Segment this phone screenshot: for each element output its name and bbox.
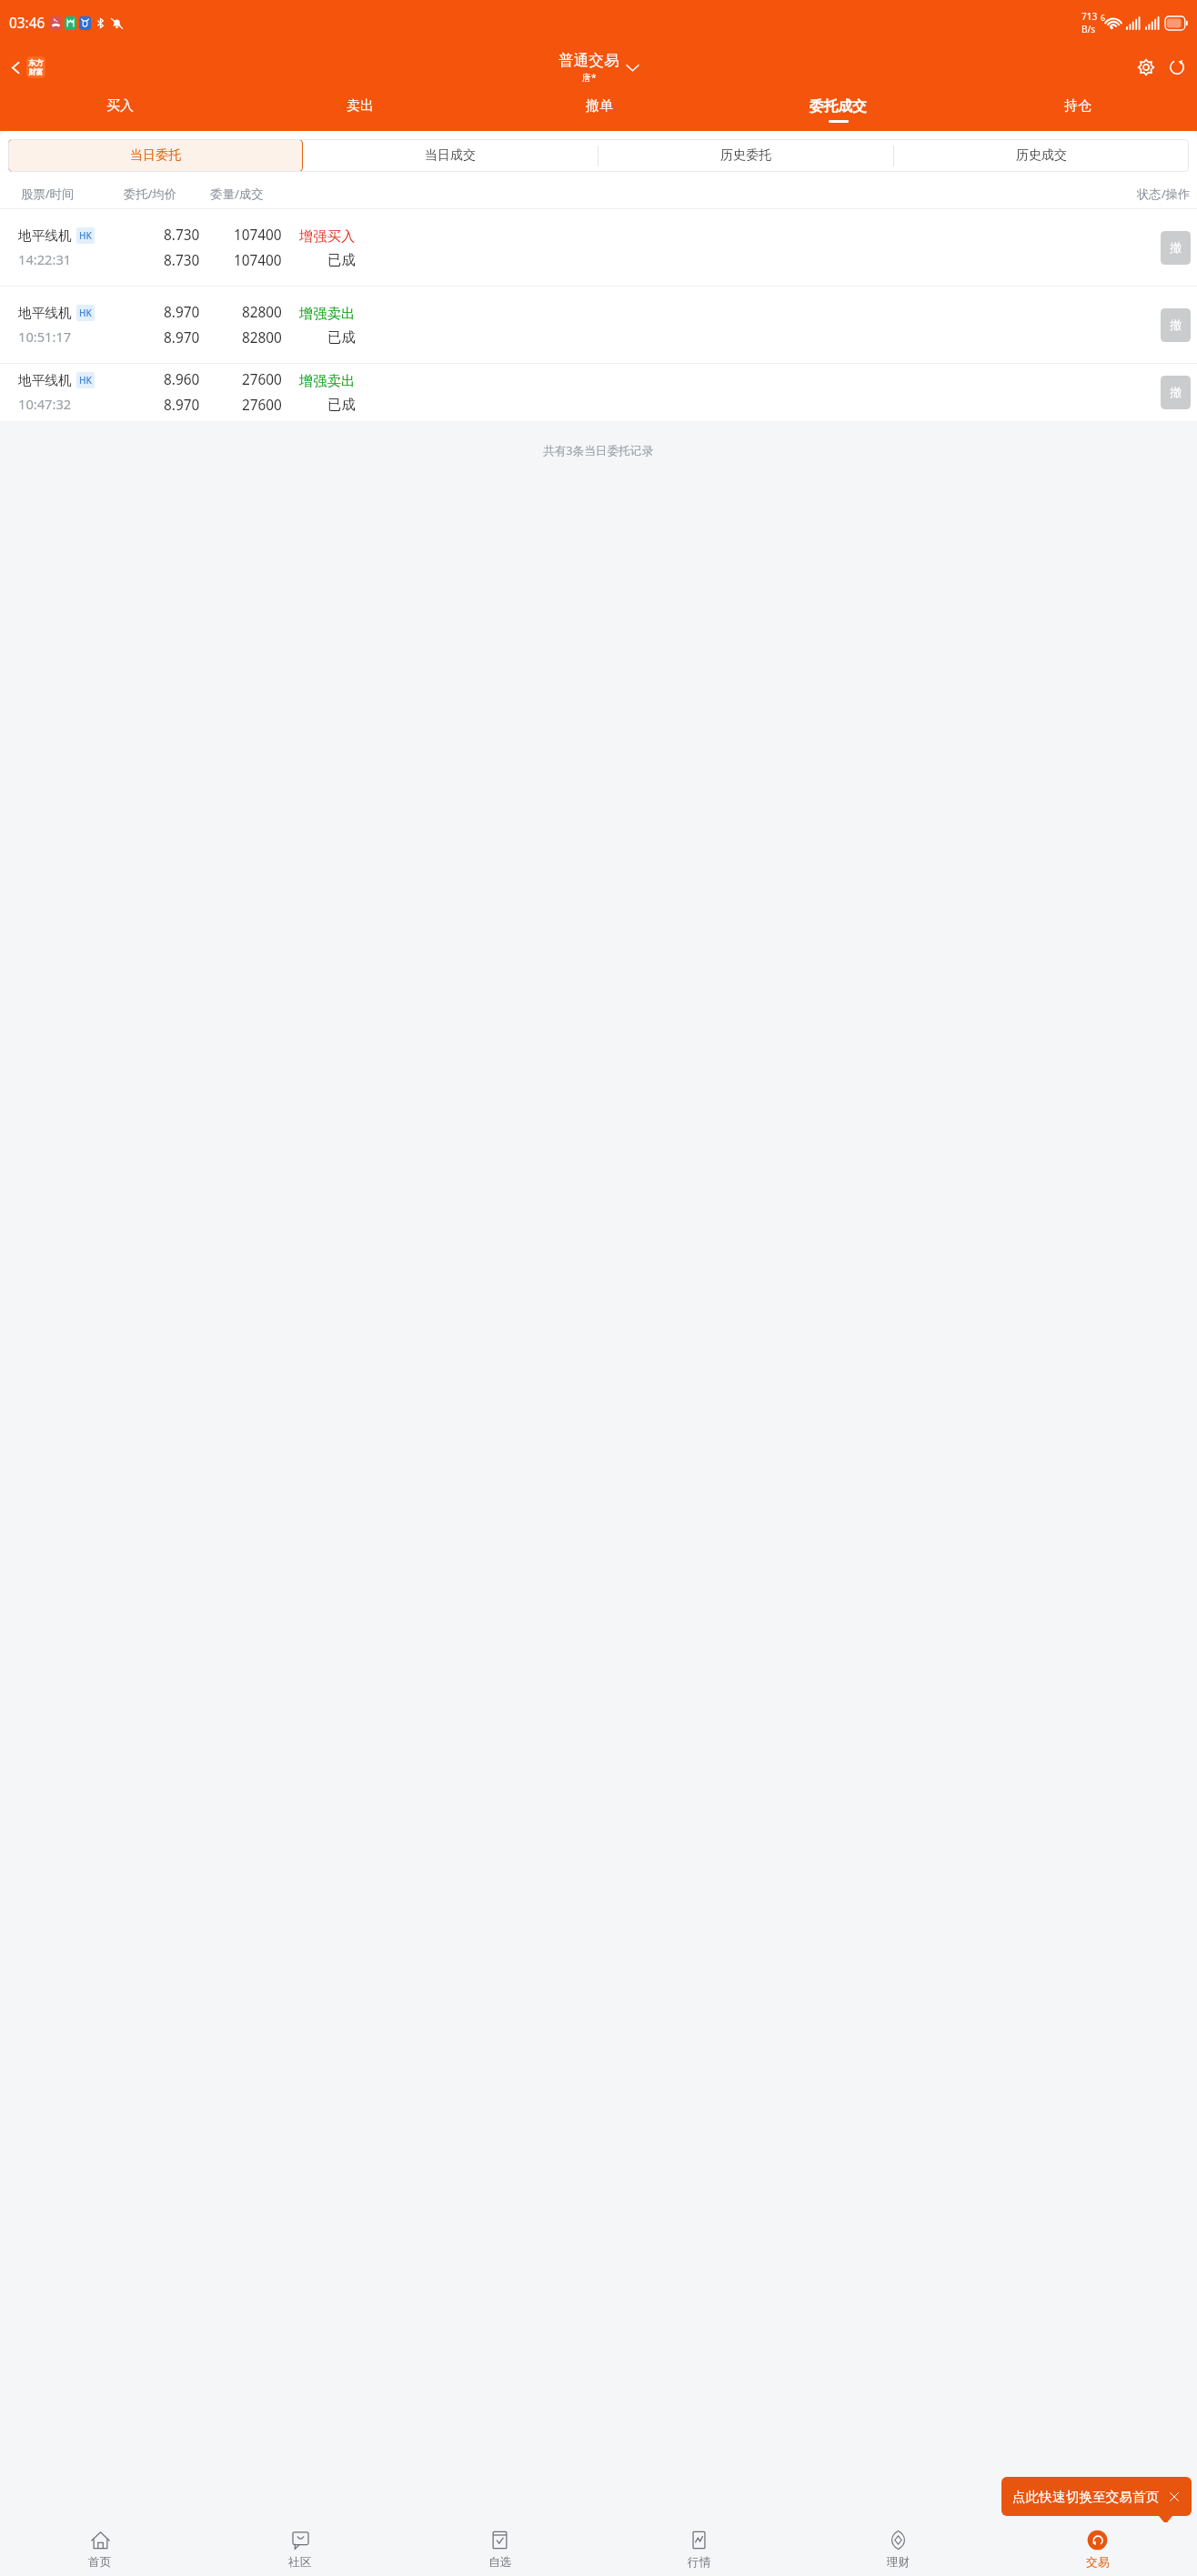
staticText: 82800 [242, 328, 282, 347]
button[interactable]: 撤 [1161, 231, 1191, 265]
button[interactable]: 理财 [799, 2522, 998, 2576]
staticText: HK [79, 229, 92, 242]
button[interactable]: 行情 [599, 2522, 799, 2576]
staticText: 8.970 [164, 303, 200, 322]
button[interactable]: 历史成交 [893, 139, 1189, 172]
staticText: 历史委托 [720, 147, 771, 164]
staticText: 已成 [327, 328, 356, 346]
button[interactable]: 自选 [400, 2522, 599, 2576]
staticText: 82800 [242, 303, 282, 322]
staticText: 8.730 [164, 226, 200, 245]
button[interactable]: 地平线机 [0, 364, 1197, 421]
staticText: 10:47:32 [18, 395, 72, 413]
staticText: 状态/操作 [1137, 186, 1191, 202]
button[interactable]: 社区 [200, 2522, 400, 2576]
button[interactable]: Back [6, 54, 48, 81]
staticText: 8.960 [164, 370, 200, 389]
staticText: 社区 [288, 2555, 312, 2570]
staticText: 03:46 [9, 14, 45, 33]
staticText: 普通交易 [558, 51, 619, 70]
staticText: 委托成交 [810, 97, 867, 116]
staticText: 当日成交 [425, 147, 476, 164]
staticText: 10:51:17 [18, 327, 72, 346]
other: Close [1168, 2490, 1181, 2503]
staticText: 27600 [242, 396, 282, 415]
staticText: 8.970 [164, 396, 200, 415]
button[interactable]: 委托成交 [719, 88, 958, 131]
staticText: HK [79, 374, 92, 387]
button[interactable]: 卖出 [240, 88, 479, 131]
staticText: 首页 [88, 2555, 112, 2570]
staticText: 撤单 [586, 97, 613, 115]
button[interactable]: 点此快速切换至交易首页 [1001, 2477, 1192, 2516]
staticText: 已成 [327, 251, 356, 268]
button[interactable]: 当日成交 [303, 139, 598, 172]
staticText: 8.730 [164, 251, 200, 270]
staticText: 理财 [887, 2555, 910, 2570]
button[interactable]: 撤 [1161, 308, 1191, 342]
staticText: 撤 [1170, 240, 1182, 256]
button[interactable]: 当日委托 [8, 139, 303, 172]
staticText: 历史成交 [1016, 147, 1067, 164]
button[interactable]: 普通交易 [558, 51, 639, 84]
button[interactable]: 交易 [998, 2522, 1197, 2576]
button[interactable]: 撤 [1161, 376, 1191, 409]
staticText: B/s [1081, 23, 1096, 35]
staticText: 撤 [1170, 385, 1182, 400]
button[interactable]: 历史委托 [598, 139, 893, 172]
staticText: 713 [1081, 10, 1098, 23]
staticText: 6 [1101, 13, 1105, 24]
staticText: 当日委托 [130, 147, 181, 164]
staticText: 撤 [1170, 317, 1182, 333]
staticText: 行情 [688, 2555, 711, 2570]
button[interactable]: 持仓 [958, 88, 1197, 131]
button[interactable]: Settings [1132, 54, 1159, 80]
staticText: 14:22:31 [18, 250, 72, 268]
button[interactable]: Refresh [1163, 54, 1190, 80]
staticText: 交易 [1086, 2555, 1110, 2570]
staticText: HK [79, 307, 92, 319]
staticText: 地平线机 [18, 227, 72, 244]
staticText: 卖出 [347, 97, 374, 115]
staticText: 点此快速切换至交易首页 [1012, 2489, 1160, 2505]
staticText: 买入 [106, 97, 134, 115]
staticText: 共有3条当日委托记录 [543, 442, 654, 458]
staticText: 增强卖出 [299, 305, 356, 322]
staticText: 增强买入 [299, 227, 356, 245]
staticText: 股票/时间 [21, 186, 75, 202]
button[interactable]: 买入 [0, 88, 240, 131]
staticText: 东方 [28, 58, 44, 67]
staticText: 107400 [234, 251, 282, 270]
staticText: 唐* [582, 71, 597, 84]
staticText: 107400 [234, 226, 282, 245]
staticText: 8.970 [164, 328, 200, 347]
button[interactable]: 撤单 [479, 88, 719, 131]
button[interactable]: 首页 [0, 2522, 200, 2576]
staticText: 自选 [488, 2555, 512, 2570]
button[interactable]: 地平线机 [0, 209, 1197, 286]
button[interactable]: 地平线机 [0, 287, 1197, 363]
staticText: 财富 [28, 67, 44, 76]
staticText: 27600 [242, 370, 282, 389]
other: Back [9, 61, 23, 75]
staticText: 委量/成交 [188, 186, 286, 202]
staticText: 已成 [327, 396, 356, 413]
staticText: 委托/均价 [100, 186, 200, 202]
staticText: 持仓 [1064, 97, 1091, 115]
staticText: 增强卖出 [299, 372, 356, 389]
staticText: 地平线机 [18, 372, 72, 388]
staticText: 地平线机 [18, 305, 72, 321]
